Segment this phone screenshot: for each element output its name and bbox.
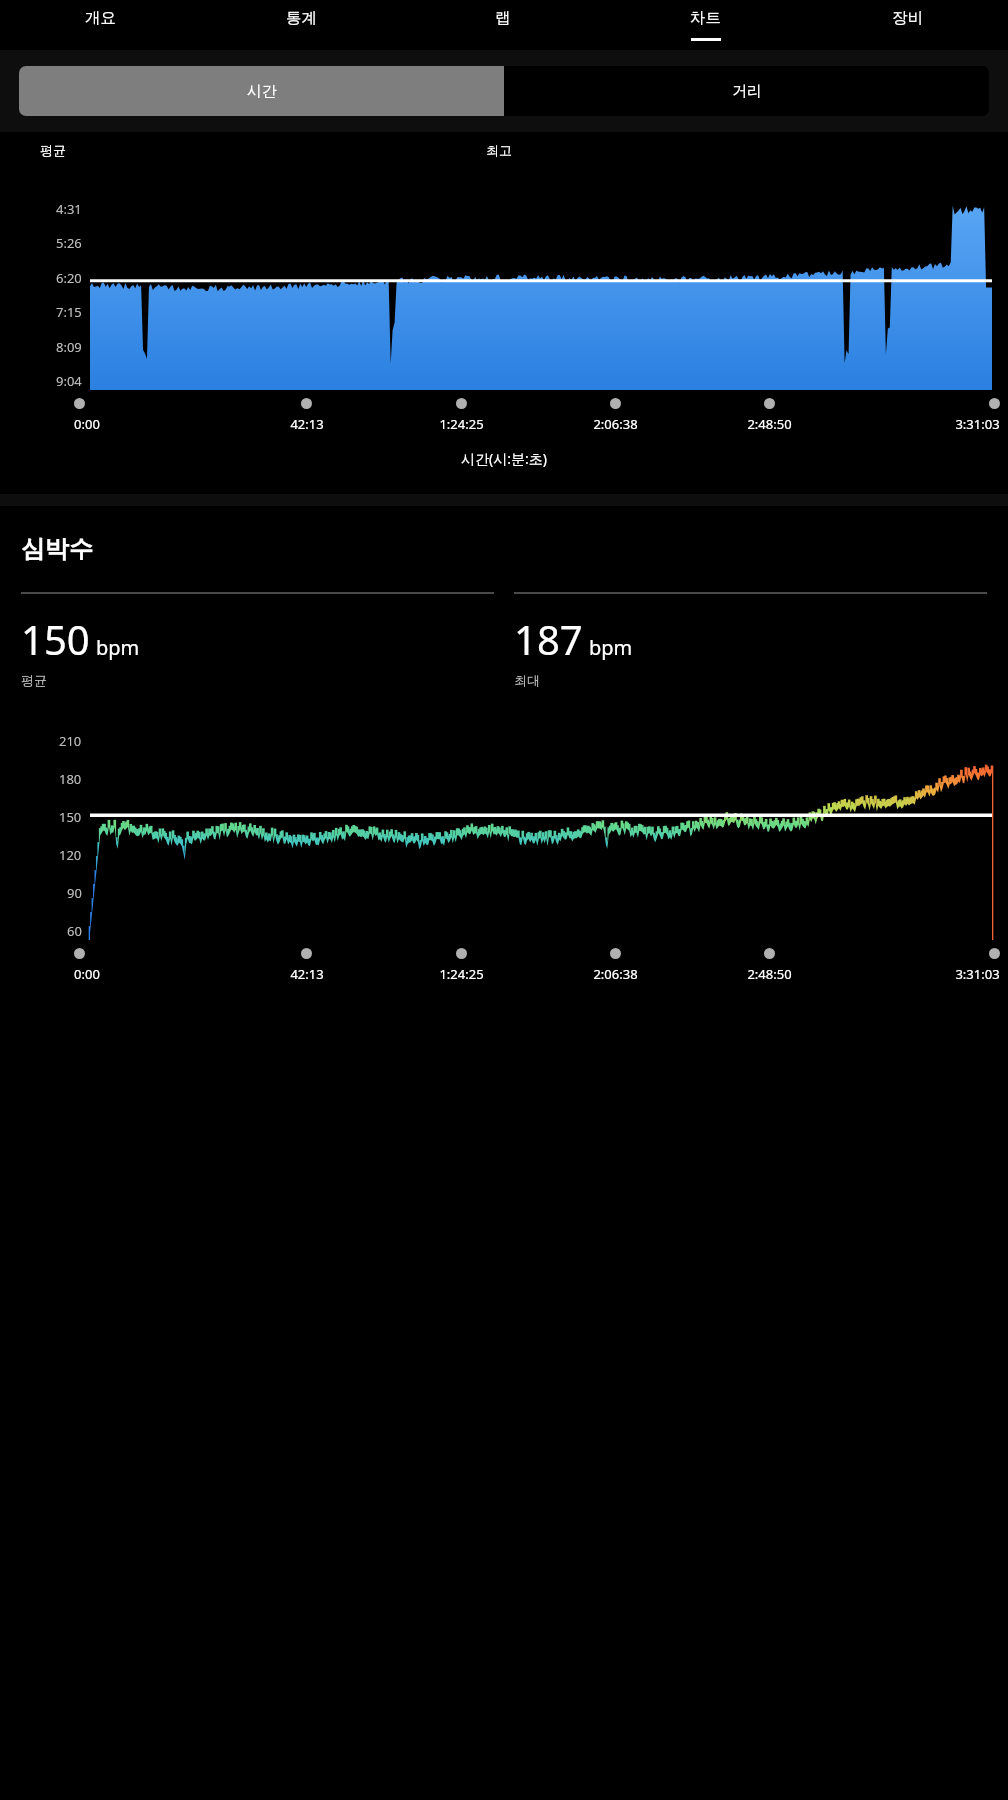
staticText: 0:00 (74, 965, 100, 983)
staticText: 최고 (486, 142, 512, 158)
staticText: 2:48:50 (747, 965, 792, 983)
staticText: 차트 (690, 8, 721, 28)
staticText: 150 (21, 612, 90, 666)
staticText: 1:24:25 (439, 415, 484, 433)
staticText: 최대 (514, 672, 540, 688)
staticText: 7:15 (56, 303, 82, 321)
staticText: 42:13 (290, 965, 324, 983)
staticText: 3:31:03 (955, 415, 1000, 433)
button[interactable]: 랩 (402, 0, 604, 50)
button[interactable]: 187 (514, 592, 987, 688)
button[interactable]: 시간 (19, 66, 504, 116)
staticText: 42:13 (290, 415, 324, 433)
staticText: 120 (59, 846, 82, 864)
staticText: 랩 (495, 8, 511, 28)
staticText: 90 (67, 884, 82, 902)
staticText: 5:26 (56, 234, 82, 252)
button[interactable]: 통계 (201, 0, 402, 50)
staticText: 통계 (286, 8, 317, 28)
staticText: 150 (59, 808, 82, 826)
staticText: 4:31 (56, 200, 82, 218)
staticText: 180 (59, 770, 82, 788)
staticText: 210 (59, 732, 82, 750)
staticText: 9:04 (56, 372, 82, 390)
staticText: 1:24:25 (439, 965, 484, 983)
staticText: 3:31:03 (955, 965, 1000, 983)
staticText: 0:00 (74, 415, 100, 433)
staticText: 6:20 (56, 269, 82, 287)
staticText: 2:06:38 (593, 965, 638, 983)
staticText: 시간 (247, 82, 277, 101)
staticText: 평균 (40, 142, 66, 158)
staticText: 60 (67, 922, 82, 940)
staticText: 2:48:50 (747, 415, 792, 433)
staticText: 시간(시:분:초) (461, 449, 547, 468)
staticText: 8:09 (56, 338, 82, 356)
staticText: 187 (514, 612, 583, 666)
button[interactable]: 150 (21, 592, 494, 688)
staticText: 2:06:38 (593, 415, 638, 433)
staticText: 거리 (732, 82, 762, 101)
staticText: 심박수 (21, 534, 93, 564)
staticText: 평균 (21, 672, 47, 688)
button[interactable]: 장비 (806, 0, 1008, 50)
staticText: bpm (96, 634, 140, 661)
staticText: 장비 (892, 8, 923, 28)
staticText: 개요 (85, 8, 116, 28)
button[interactable]: 개요 (0, 0, 201, 50)
staticText: bpm (589, 634, 633, 661)
button[interactable]: 차트 (604, 0, 806, 50)
button[interactable]: 거리 (504, 66, 989, 116)
